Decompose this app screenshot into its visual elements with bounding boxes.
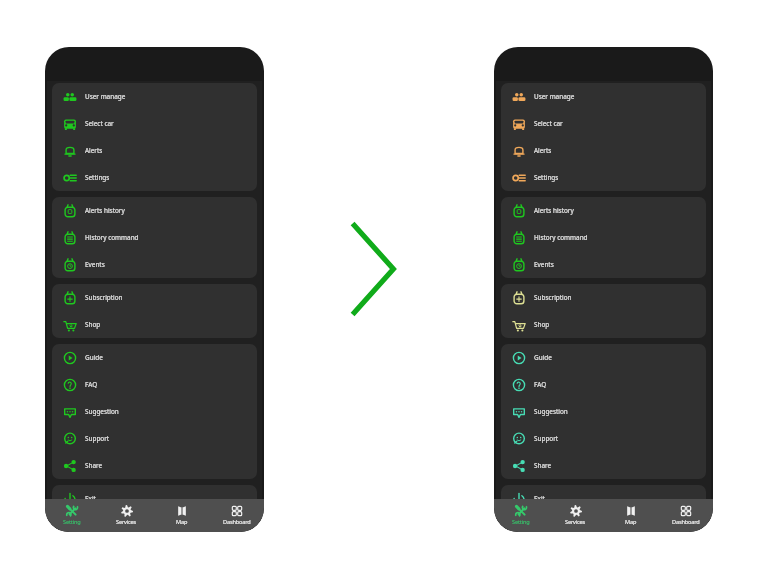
staticText: User manage xyxy=(534,92,575,101)
button[interactable]: Events xyxy=(52,251,257,278)
button[interactable]: Alerts xyxy=(501,137,706,164)
button[interactable]: Exit xyxy=(501,485,706,512)
button[interactable]: FAQ xyxy=(501,371,706,398)
button[interactable]: Select car xyxy=(501,110,706,137)
staticText: Setting xyxy=(512,518,530,526)
staticText: Select car xyxy=(85,119,114,128)
staticText: FAQ xyxy=(534,380,547,389)
button[interactable]: History command xyxy=(52,224,257,251)
button[interactable]: Select car xyxy=(52,110,257,137)
staticText: Subscription xyxy=(85,293,123,302)
staticText: Exit xyxy=(85,494,96,503)
button[interactable]: Dashboard xyxy=(658,499,713,532)
staticText: Events xyxy=(85,260,105,269)
button[interactable]: Suggestion xyxy=(501,398,706,425)
staticText: Support xyxy=(534,434,559,443)
staticText: Select car xyxy=(534,119,563,128)
button[interactable]: Subscription xyxy=(501,284,706,311)
button[interactable]: Support xyxy=(52,425,257,452)
button[interactable]: Share xyxy=(52,452,257,479)
staticText: Shop xyxy=(534,320,550,329)
button[interactable]: Support xyxy=(501,425,706,452)
button[interactable]: Map xyxy=(154,499,209,532)
staticText: Suggestion xyxy=(534,407,568,416)
button[interactable]: Shop xyxy=(52,311,257,338)
staticText: History command xyxy=(534,233,588,242)
staticText: Support xyxy=(85,434,110,443)
button[interactable]: Services xyxy=(548,499,603,532)
button[interactable]: Alerts xyxy=(52,137,257,164)
button[interactable]: Dashboard xyxy=(209,499,264,532)
staticText: Alerts history xyxy=(85,206,125,215)
staticText: Guide xyxy=(85,353,103,362)
staticText: Exit xyxy=(534,494,545,503)
button[interactable]: FAQ xyxy=(52,371,257,398)
button[interactable]: Subscription xyxy=(52,284,257,311)
button[interactable]: Exit xyxy=(52,485,257,512)
button[interactable]: History command xyxy=(501,224,706,251)
button[interactable]: Guide xyxy=(501,344,706,371)
staticText: Shop xyxy=(85,320,101,329)
staticText: Services xyxy=(116,518,137,526)
staticText: Alerts xyxy=(534,146,552,155)
staticText: Guide xyxy=(534,353,552,362)
staticText: Suggestion xyxy=(85,407,119,416)
button[interactable]: Events xyxy=(501,251,706,278)
button[interactable]: Guide xyxy=(52,344,257,371)
button[interactable]: Share xyxy=(501,452,706,479)
button[interactable]: Map xyxy=(603,499,658,532)
staticText: FAQ xyxy=(85,380,98,389)
staticText: Map xyxy=(176,518,188,526)
staticText: History command xyxy=(85,233,139,242)
button[interactable]: Setting xyxy=(494,499,548,532)
button[interactable]: Settings xyxy=(52,164,257,191)
button[interactable]: Alerts history xyxy=(501,197,706,224)
staticText: Alerts history xyxy=(534,206,574,215)
button[interactable]: Alerts history xyxy=(52,197,257,224)
staticText: Setting xyxy=(63,518,81,526)
staticText: Alerts xyxy=(85,146,103,155)
staticText: Subscription xyxy=(534,293,572,302)
staticText: Events xyxy=(534,260,554,269)
staticText: Dashboard xyxy=(672,518,700,526)
button[interactable]: User manage xyxy=(501,83,706,110)
staticText: User manage xyxy=(85,92,126,101)
staticText: Settings xyxy=(534,173,559,182)
staticText: Share xyxy=(85,461,103,470)
staticText: Dashboard xyxy=(223,518,251,526)
staticText: Services xyxy=(565,518,586,526)
button[interactable]: Settings xyxy=(501,164,706,191)
button[interactable]: Shop xyxy=(501,311,706,338)
button[interactable]: User manage xyxy=(52,83,257,110)
button[interactable]: Services xyxy=(99,499,154,532)
staticText: Map xyxy=(625,518,637,526)
staticText: Share xyxy=(534,461,552,470)
button[interactable]: Setting xyxy=(45,499,99,532)
staticText: Settings xyxy=(85,173,110,182)
button[interactable]: Suggestion xyxy=(52,398,257,425)
